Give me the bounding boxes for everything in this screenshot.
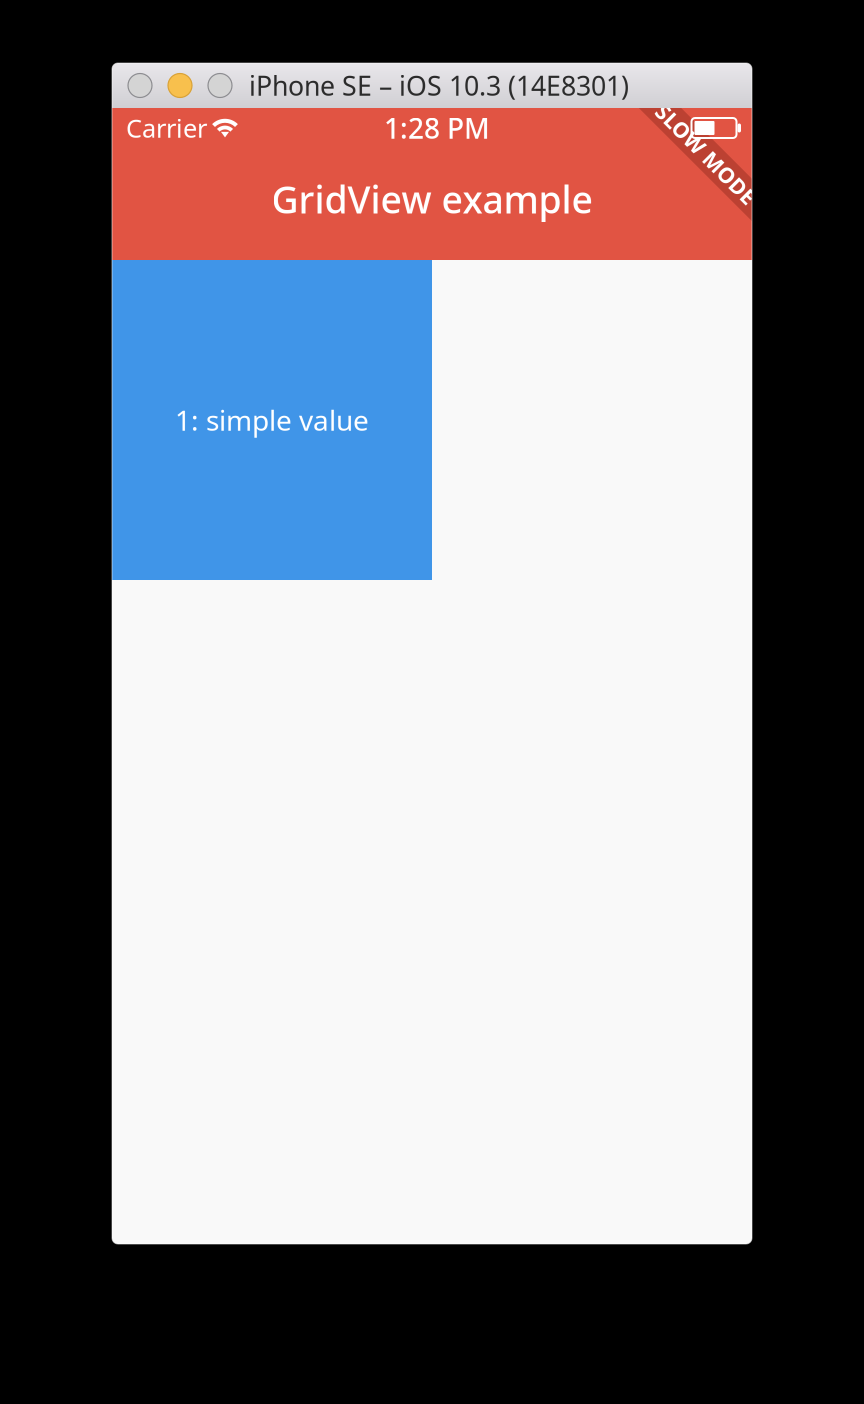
staticText: GridView example xyxy=(271,174,592,224)
staticText: SLOW MODE xyxy=(640,140,772,168)
button[interactable]: Minimize xyxy=(168,73,192,97)
button[interactable]: Zoom xyxy=(208,73,232,97)
button[interactable]: Close xyxy=(128,73,152,97)
button[interactable]: 1: simple value xyxy=(112,260,432,580)
staticText: iPhone SE – iOS 10.3 (14E8301) xyxy=(249,68,629,103)
staticText: 1: simple value xyxy=(175,401,369,439)
staticText: 1:28 PM xyxy=(384,109,490,147)
staticText: Carrier xyxy=(126,111,207,145)
